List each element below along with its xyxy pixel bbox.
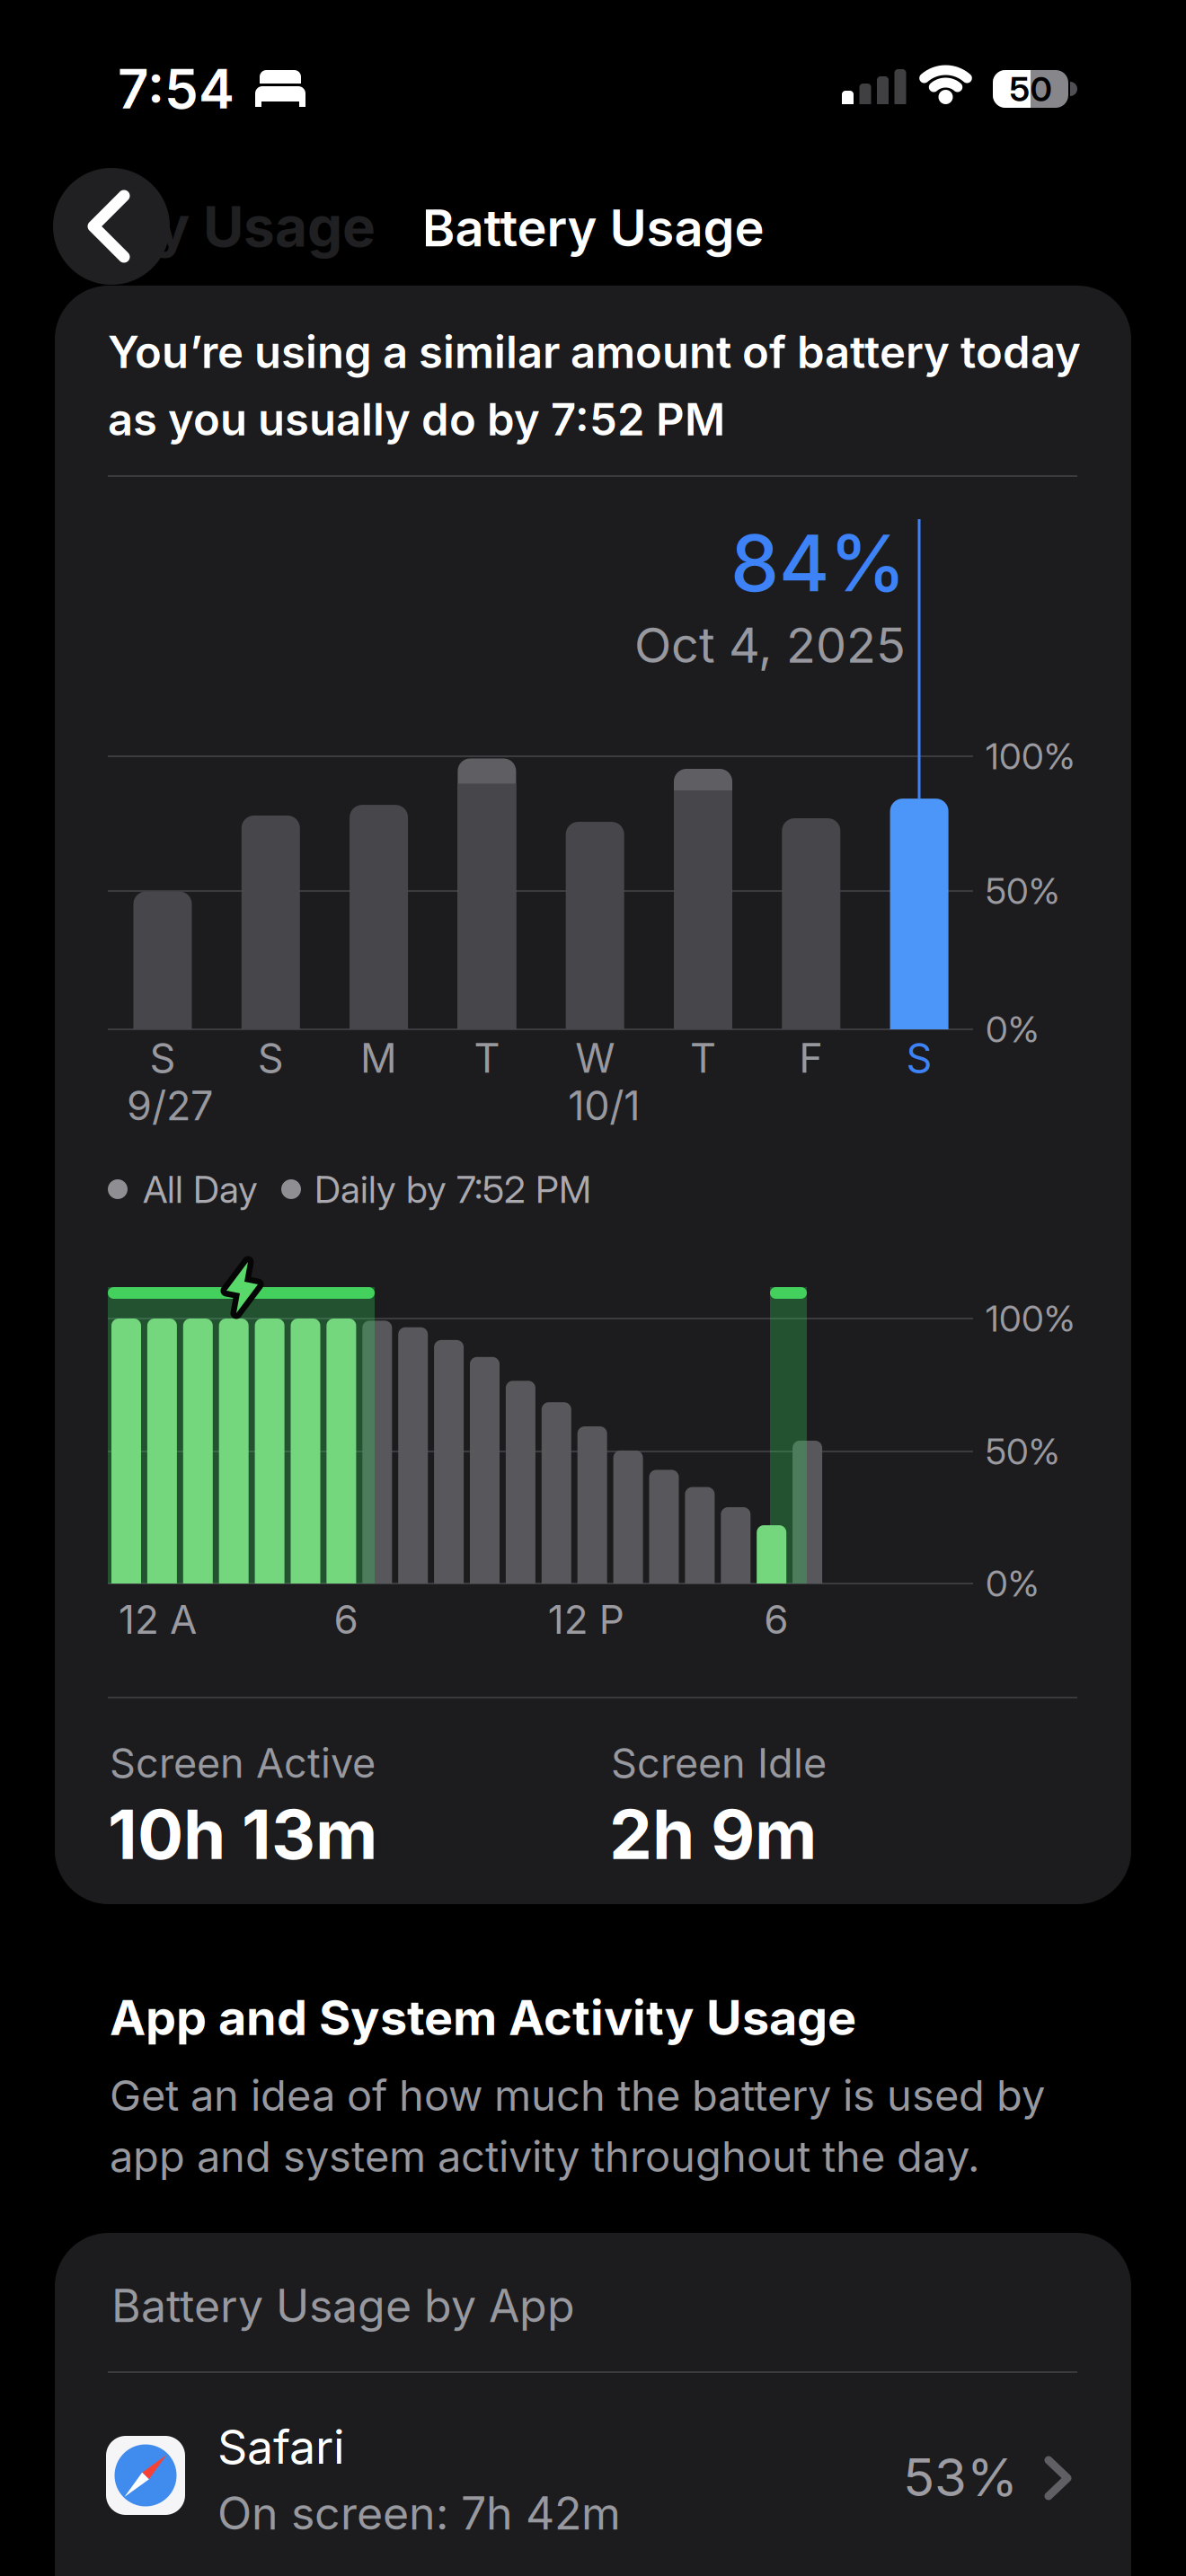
- button[interactable]: Safari: [55, 2393, 1131, 2576]
- staticText: You’re using a similar amount of battery…: [108, 326, 1081, 379]
- staticText: Battery Usage by App: [111, 2279, 575, 2333]
- staticText: S: [150, 1034, 176, 1082]
- staticText: 100%: [986, 1297, 1075, 1340]
- staticText: 50%: [986, 869, 1059, 913]
- staticText: T: [690, 1034, 716, 1082]
- staticText: 100%: [986, 735, 1075, 778]
- staticText: Screen Active: [110, 1739, 376, 1788]
- staticText: 10h 13m: [108, 1793, 377, 1875]
- staticText: S: [258, 1034, 284, 1082]
- staticText: 0%: [986, 1008, 1039, 1051]
- staticText: 50: [1009, 68, 1052, 110]
- staticText: Get an idea of how much the battery is u…: [110, 2070, 1045, 2121]
- staticText: Daily by 7:52 PM: [314, 1166, 591, 1212]
- staticText: T: [474, 1034, 500, 1082]
- staticText: App and System Activity Usage: [110, 1988, 856, 2047]
- staticText: ily Usage: [126, 193, 376, 260]
- staticText: 53%: [903, 2446, 1018, 2509]
- staticText: F: [799, 1034, 823, 1082]
- staticText: 10/1: [568, 1081, 640, 1130]
- staticText: 6: [334, 1596, 358, 1643]
- staticText: Screen Idle: [611, 1739, 827, 1788]
- staticText: 9/27: [127, 1081, 213, 1130]
- staticText: On screen: 7h 42m: [217, 2486, 621, 2540]
- staticText: W: [575, 1034, 615, 1082]
- staticText: Oct 4, 2025: [634, 616, 906, 674]
- staticText: 2h 9m: [609, 1793, 817, 1875]
- staticText: S: [906, 1034, 932, 1082]
- staticText: Safari: [217, 2418, 345, 2475]
- staticText: 6: [764, 1596, 788, 1643]
- staticText: 7:54: [118, 56, 235, 122]
- button[interactable]: Back: [53, 168, 170, 285]
- staticText: 84%: [730, 516, 906, 610]
- staticText: M: [360, 1034, 397, 1082]
- staticText: 50%: [986, 1430, 1059, 1473]
- staticText: 12 P: [548, 1596, 624, 1643]
- staticText: 12 A: [119, 1596, 197, 1643]
- staticText: Battery Usage: [422, 198, 764, 259]
- staticText: All Day: [143, 1166, 258, 1212]
- staticText: as you usually do by 7:52 PM: [108, 393, 725, 446]
- staticText: 0%: [986, 1562, 1039, 1605]
- staticText: app and system activity throughout the d…: [110, 2131, 980, 2182]
